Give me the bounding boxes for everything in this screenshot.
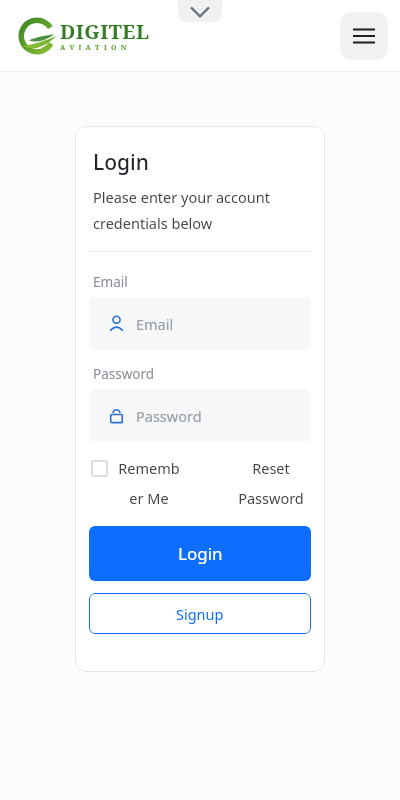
staticText: A V I A T I O N bbox=[60, 43, 128, 53]
staticText: Signup bbox=[176, 604, 224, 624]
button[interactable]: Signup bbox=[89, 593, 311, 634]
button[interactable]: Email bbox=[89, 297, 311, 350]
staticText: Email bbox=[93, 273, 128, 291]
button[interactable]: Remember Me bbox=[91, 458, 233, 509]
staticText: Login bbox=[178, 542, 223, 565]
staticText: Password bbox=[136, 406, 202, 426]
button[interactable]: Password bbox=[89, 389, 311, 442]
button[interactable]: Login bbox=[89, 526, 311, 581]
staticText: Please enter your account credentials be… bbox=[93, 187, 311, 233]
button[interactable]: Menu bbox=[340, 12, 388, 60]
button[interactable]: Expand bbox=[178, 0, 222, 22]
staticText: DIGITEL bbox=[60, 18, 150, 45]
staticText: Login bbox=[93, 148, 149, 177]
staticText: Email bbox=[136, 314, 174, 334]
staticText: Remember Me bbox=[118, 458, 180, 509]
staticText: Password bbox=[93, 365, 155, 383]
button[interactable]: Reset Password bbox=[233, 458, 309, 509]
